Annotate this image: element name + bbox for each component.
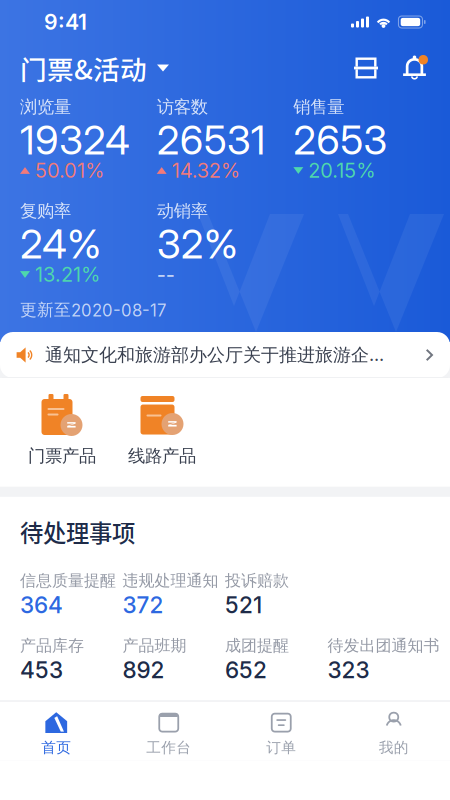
staticText: 通知文化和旅游部办公厅关于推进旅游企业的快速发展计划... <box>45 344 400 366</box>
staticText: 32% <box>157 220 238 268</box>
staticText: 销售量 <box>293 96 344 118</box>
staticText: 访客数 <box>157 96 208 118</box>
button[interactable]: 违规处理通知 <box>122 573 225 618</box>
staticText: 更新至2020-08-17 <box>20 299 166 320</box>
button[interactable]: 通知文化和旅游部办公厅关于推进旅游企业的快速发展计划... <box>0 332 450 378</box>
staticText: 19324 <box>20 116 130 164</box>
staticText: -- <box>157 262 175 287</box>
button[interactable]: 门票&活动 <box>20 41 169 95</box>
staticText: 521 <box>225 591 262 619</box>
staticText: 动销率 <box>157 200 208 222</box>
staticText: 信息质量提醒 <box>20 570 116 591</box>
staticText: 20.15% <box>308 158 375 183</box>
staticText: 50.01% <box>35 158 104 183</box>
staticText: 24% <box>20 220 101 268</box>
button[interactable]: 待发出团通知书 <box>327 638 430 683</box>
button[interactable]: 首页 <box>0 702 112 761</box>
button[interactable]: 线路产品 <box>112 390 212 471</box>
staticText: 线路产品 <box>128 445 196 467</box>
staticText: 待发出团通知书 <box>327 635 439 656</box>
button[interactable]: Notifications <box>399 53 430 83</box>
staticText: 待处理事项 <box>20 515 135 549</box>
button[interactable]: 成团提醒 <box>225 638 327 683</box>
button[interactable]: 信息质量提醒 <box>20 573 122 618</box>
staticText: 892 <box>122 656 164 684</box>
staticText: 门票&活动 <box>20 49 147 87</box>
staticText: 9:41 <box>44 9 87 35</box>
staticText: 2653 <box>293 116 387 164</box>
staticText: 浏览量 <box>20 96 71 118</box>
button[interactable]: 门票产品 <box>12 390 112 471</box>
staticText: 364 <box>20 591 63 619</box>
button[interactable]: 投诉赔款 <box>225 573 327 618</box>
staticText: 工作台 <box>146 738 191 757</box>
button[interactable]: 产品班期 <box>122 638 225 683</box>
button[interactable]: 订单 <box>225 702 337 761</box>
staticText: 门票产品 <box>28 445 96 467</box>
staticText: 订单 <box>266 738 296 757</box>
staticText: 323 <box>327 656 369 684</box>
staticText: 复购率 <box>20 200 71 222</box>
staticText: 14.32% <box>172 158 240 183</box>
staticText: 我的 <box>379 738 409 757</box>
staticText: 首页 <box>41 738 71 757</box>
staticText: 违规处理通知 <box>122 570 218 591</box>
staticText: 26531 <box>157 116 266 164</box>
staticText: 成团提醒 <box>225 635 289 656</box>
button[interactable]: 工作台 <box>112 702 225 761</box>
staticText: 372 <box>122 591 163 619</box>
staticText: 652 <box>225 656 267 684</box>
button[interactable]: 我的 <box>337 702 450 761</box>
staticText: 产品班期 <box>122 635 186 656</box>
staticText: 453 <box>20 656 63 684</box>
staticText: 13.21% <box>35 262 100 287</box>
button[interactable]: Switch layout <box>351 53 381 83</box>
button[interactable]: 产品库存 <box>20 638 122 683</box>
staticText: 投诉赔款 <box>225 570 289 591</box>
staticText: 产品库存 <box>20 635 84 656</box>
